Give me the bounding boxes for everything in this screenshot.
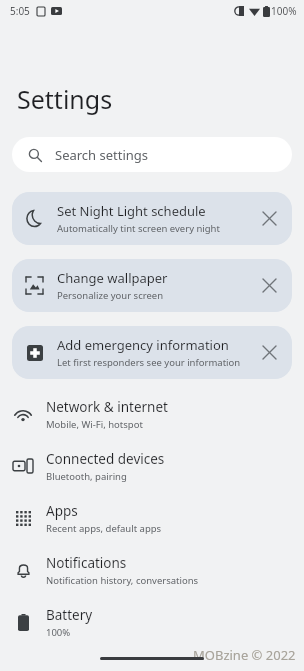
button[interactable]: Apps bbox=[0, 492, 304, 544]
staticText: Search settings bbox=[55, 146, 149, 164]
button[interactable]: Dismiss Change wallpaper bbox=[247, 259, 292, 312]
staticText: Let first responders see your informatio… bbox=[57, 356, 241, 369]
staticText: 100% bbox=[46, 626, 71, 639]
button[interactable]: Connected devices bbox=[0, 440, 304, 492]
button[interactable]: Battery bbox=[0, 596, 304, 648]
button[interactable]: Dismiss Add emergency information bbox=[247, 326, 292, 379]
button[interactable]: Search settings bbox=[12, 137, 292, 172]
staticText: Add emergency information bbox=[57, 336, 229, 354]
staticText: Recent apps, default apps bbox=[46, 522, 162, 535]
button[interactable]: Network & internet bbox=[0, 388, 304, 440]
staticText: Notification history, conversations bbox=[46, 574, 199, 587]
button[interactable]: Notifications bbox=[0, 544, 304, 596]
button[interactable]: Change wallpaper bbox=[12, 259, 292, 312]
staticText: 5:05 bbox=[10, 4, 30, 18]
staticText: Set Night Light schedule bbox=[57, 202, 206, 220]
button[interactable]: Add emergency information bbox=[12, 326, 292, 379]
staticText: 100% bbox=[271, 4, 297, 18]
staticText: Apps bbox=[46, 502, 78, 520]
staticText: Battery bbox=[46, 606, 93, 624]
staticText: Bluetooth, pairing bbox=[46, 470, 127, 483]
button[interactable]: Dismiss Set Night Light schedule bbox=[247, 192, 292, 245]
staticText: Personalize your screen bbox=[57, 289, 164, 302]
staticText: Settings bbox=[17, 82, 113, 116]
staticText: Mobile, Wi-Fi, hotspot bbox=[46, 418, 143, 431]
button[interactable]: Set Night Light schedule bbox=[12, 192, 292, 245]
staticText: Notifications bbox=[46, 554, 127, 572]
staticText: Automatically tint screen every night bbox=[57, 222, 220, 235]
staticText: Network & internet bbox=[46, 398, 168, 416]
staticText: Connected devices bbox=[46, 450, 165, 468]
staticText: MOBzine © 2022 bbox=[193, 646, 296, 664]
staticText: Change wallpaper bbox=[57, 269, 168, 287]
